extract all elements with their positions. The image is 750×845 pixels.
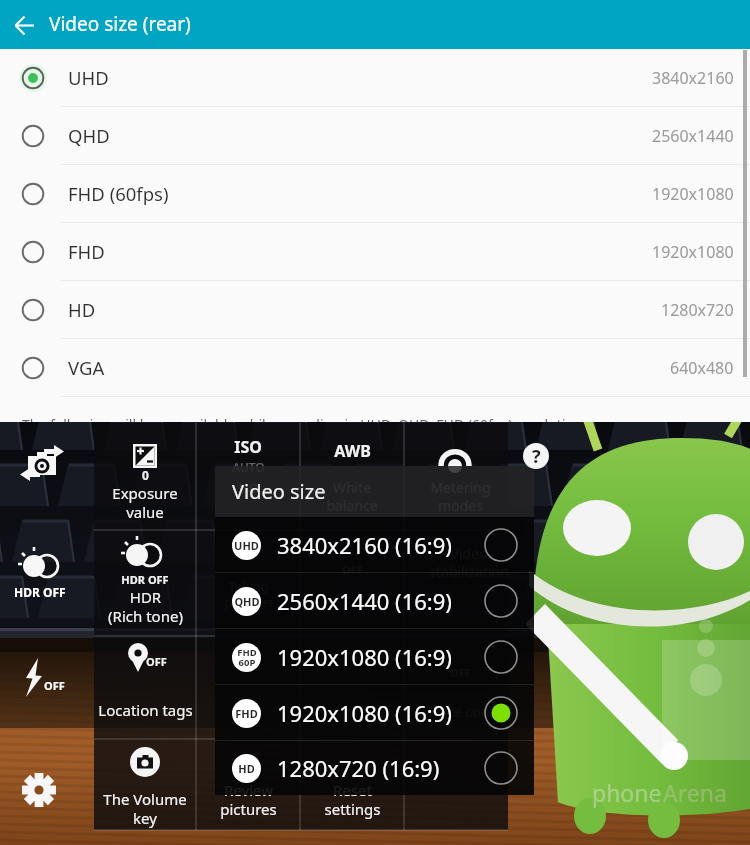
- staticText: 640x480: [670, 357, 734, 379]
- staticText: ISO: [234, 436, 262, 458]
- staticText: FHD: [235, 706, 258, 721]
- staticText: 1280x720: [661, 299, 734, 321]
- button[interactable]: Video stabilization: [404, 530, 508, 636]
- button[interactable]: Switch camera: [6, 436, 74, 504]
- staticText: Exposure value: [112, 483, 178, 522]
- button[interactable]: UHD: [215, 517, 534, 573]
- staticText: FHD: [68, 239, 105, 264]
- button[interactable]: FHD: [0, 223, 750, 281]
- button[interactable]: Voice control: [404, 636, 508, 739]
- button[interactable]: Taking pictures: [196, 530, 300, 636]
- staticText: HDR (Rich tone): [108, 587, 183, 626]
- button[interactable]: Settings: [10, 762, 68, 820]
- staticText: HDR OFF: [121, 572, 169, 587]
- button[interactable]: UHD: [0, 49, 750, 107]
- staticText: QHD: [68, 123, 110, 148]
- button[interactable]: HD: [215, 741, 534, 795]
- button[interactable]: Exposure value: [94, 423, 196, 530]
- staticText: 0: [142, 467, 149, 483]
- staticText: The Volume key: [103, 789, 187, 828]
- staticText: 1920x1080: [652, 241, 734, 263]
- staticText: OFF: [146, 654, 167, 669]
- staticText: AUTO: [232, 459, 265, 475]
- button[interactable]: HD: [0, 281, 750, 339]
- button[interactable]: White balance: [300, 423, 404, 530]
- staticText: Reset settings: [324, 780, 381, 819]
- staticText: 2560x1440 (16:9): [277, 586, 452, 616]
- staticText: 1920x1080 (16:9): [277, 698, 452, 728]
- staticText: 1280x720 (16:9): [277, 753, 440, 783]
- staticText: Video size: [232, 478, 326, 505]
- staticText: HD: [238, 761, 255, 776]
- staticText: ?: [532, 444, 541, 469]
- staticText: QHD: [234, 594, 260, 609]
- staticText: FHD (60fps): [68, 181, 169, 206]
- staticText: AWB: [334, 440, 371, 462]
- staticText: 3840x2160: [652, 67, 734, 89]
- staticText: Taking pictures: [224, 577, 273, 611]
- staticText: phone: [592, 777, 662, 808]
- button[interactable]: Metering modes: [404, 423, 508, 530]
- button[interactable]: FHD: [215, 685, 534, 741]
- button[interactable]: FHD 60P: [215, 629, 534, 685]
- button[interactable]: QHD: [0, 107, 750, 165]
- staticText: 1920x1080 (16:9): [277, 642, 452, 672]
- button[interactable]: Help: [523, 443, 549, 469]
- button[interactable]: Video size: [300, 530, 404, 636]
- button[interactable]: More settings: [404, 739, 508, 830]
- staticText: OFF: [44, 678, 65, 693]
- staticText: OFF: [238, 548, 259, 563]
- staticText: Video size (rear): [49, 11, 191, 37]
- button[interactable]: The Volume key: [94, 739, 196, 830]
- staticText: Location tags: [98, 700, 193, 720]
- button[interactable]: Reset settings: [300, 739, 404, 830]
- button[interactable]: Reset settings: [300, 636, 404, 739]
- staticText: 1920x1080: [652, 183, 734, 205]
- staticText: HD: [68, 297, 96, 322]
- staticText: Voice control: [427, 702, 512, 721]
- button[interactable]: Review pictures: [196, 636, 300, 739]
- staticText: HDR OFF: [14, 584, 66, 600]
- button[interactable]: Location tags: [94, 636, 196, 739]
- staticText: Review pictures: [220, 780, 277, 819]
- button[interactable]: VGA: [0, 339, 750, 397]
- staticText: FHD 60P: [237, 646, 257, 669]
- button[interactable]: FHD (60fps): [0, 165, 750, 223]
- button[interactable]: HDR off: [6, 536, 74, 604]
- staticText: OFF: [450, 665, 471, 680]
- staticText: VGA: [68, 355, 105, 380]
- staticText: UHD: [234, 538, 259, 553]
- staticText: OFF: [342, 562, 363, 577]
- staticText: The following will be unavailable while …: [22, 415, 587, 422]
- staticText: White balance: [326, 478, 378, 515]
- button[interactable]: HDR rich tone: [94, 530, 196, 636]
- staticText: 2560x1440: [652, 125, 734, 147]
- staticText: Video stabilization: [429, 544, 509, 581]
- staticText: 3840x2160 (16:9): [277, 530, 452, 560]
- button[interactable]: ISO: [196, 423, 300, 530]
- button[interactable]: QHD: [215, 573, 534, 629]
- staticText: Arena: [663, 777, 727, 808]
- staticText: Metering modes: [430, 478, 491, 515]
- staticText: ISO: [238, 480, 259, 496]
- button[interactable]: Flash off: [6, 650, 68, 712]
- button[interactable]: Review pictures: [196, 739, 300, 830]
- button[interactable]: Back: [0, 1, 49, 49]
- staticText: UHD: [68, 65, 109, 90]
